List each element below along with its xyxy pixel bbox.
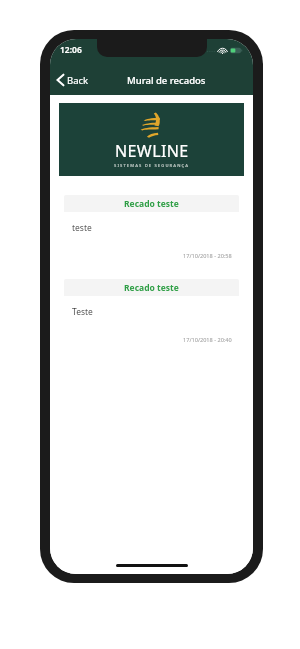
staticText: Recado teste — [124, 198, 179, 210]
staticText: Recado teste — [124, 282, 179, 294]
other: NewLine logo — [137, 112, 167, 138]
staticText: NEWLINE — [115, 140, 189, 162]
staticText: teste — [72, 222, 92, 234]
button[interactable]: Recado teste — [64, 195, 239, 266]
staticText: 12:06 — [60, 44, 82, 56]
staticText: 17/10/2018 - 20:40 — [183, 336, 232, 344]
button[interactable]: Recado teste — [64, 279, 239, 350]
staticText: SISTEMAS DE SEGURANÇA — [114, 163, 190, 169]
staticText: 17/10/2018 - 20:58 — [183, 252, 232, 260]
staticText: Teste — [72, 306, 93, 318]
staticText: Mural de recados — [127, 74, 206, 87]
staticText: Back — [67, 74, 89, 87]
button[interactable]: Back — [50, 65, 95, 95]
